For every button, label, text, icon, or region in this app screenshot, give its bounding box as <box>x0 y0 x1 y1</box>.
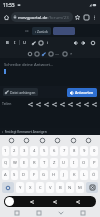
button[interactable]: N <box>66 182 74 193</box>
button[interactable]: M <box>76 182 84 193</box>
button[interactable]: List <box>47 50 54 57</box>
staticText: R <box>33 160 36 166</box>
button[interactable]: 1 <box>2 146 9 156</box>
button[interactable]: Settings <box>69 136 78 145</box>
button[interactable]: Code <box>33 50 40 57</box>
button[interactable]: mevgportal.de <box>11 12 73 22</box>
button[interactable]: Expand <box>84 136 93 145</box>
staticText: B <box>59 185 62 191</box>
button[interactable]: ‹ Zurück <box>32 27 51 35</box>
button[interactable]: Q <box>2 158 9 168</box>
button[interactable]: Share <box>82 100 90 108</box>
button[interactable]: 2 <box>11 146 18 156</box>
button[interactable]: Search <box>7 136 16 145</box>
staticText: — <box>55 51 60 57</box>
button[interactable]: 6 <box>50 146 58 156</box>
button[interactable]: Reddit <box>42 100 50 108</box>
button[interactable]: Backspace <box>86 182 98 193</box>
button[interactable]: Pinterest <box>50 100 58 108</box>
button[interactable]: Ö <box>90 170 98 180</box>
button[interactable]: R <box>30 158 38 168</box>
button[interactable]: U <box>60 158 68 168</box>
button[interactable]: L <box>80 170 88 180</box>
button[interactable]: Repeat <box>50 197 59 206</box>
button[interactable]: F <box>30 170 38 180</box>
staticText: Ö <box>92 172 96 178</box>
button[interactable]: Share <box>73 197 82 206</box>
button[interactable]: Back <box>56 208 66 217</box>
button[interactable]: Antworten <box>67 88 97 97</box>
button[interactable]: E <box>20 158 28 168</box>
button[interactable]: Underline <box>21 39 28 46</box>
button[interactable]: Quote <box>26 50 33 57</box>
button[interactable]: Tabs <box>82 11 91 23</box>
button[interactable]: Tumblr <box>58 100 66 108</box>
button[interactable]: Clipboard <box>38 136 47 145</box>
button[interactable]: V <box>46 182 54 193</box>
button[interactable]: Email <box>74 100 82 108</box>
button[interactable]: Redo <box>79 39 86 46</box>
staticText: C <box>39 185 42 191</box>
button[interactable]: Shuffle <box>27 197 36 206</box>
button[interactable]: C <box>36 182 44 193</box>
button[interactable]: Schreibe deine Antwort… <box>0 58 100 86</box>
staticText: D <box>22 172 26 178</box>
button[interactable]: 3 <box>20 146 28 156</box>
button[interactable]: Voice input <box>53 136 62 145</box>
staticText: 4 <box>33 148 36 154</box>
staticText: A <box>4 172 7 178</box>
button[interactable]: S <box>11 170 18 180</box>
staticText: B <box>6 40 9 46</box>
button[interactable]: H <box>50 170 58 180</box>
button[interactable]: 8 <box>70 146 78 156</box>
button[interactable]: G <box>40 170 48 180</box>
button[interactable]: A <box>2 170 9 180</box>
button[interactable]: 7 <box>60 146 68 156</box>
button[interactable]: Italic <box>11 39 18 46</box>
staticText: I <box>14 40 16 46</box>
button[interactable]: Clear <box>68 50 75 57</box>
button[interactable]: I <box>70 158 78 168</box>
button[interactable]: More options <box>91 11 98 23</box>
button[interactable]: Info <box>44 39 51 46</box>
button[interactable]: Emoji <box>89 39 96 46</box>
button[interactable]: 9 <box>80 146 88 156</box>
button[interactable]: Keyboard <box>78 208 88 217</box>
button[interactable]: Y <box>16 182 24 193</box>
button[interactable]: Play <box>5 197 14 206</box>
button[interactable]: 0 <box>90 146 98 156</box>
staticText: i <box>47 40 49 46</box>
button[interactable]: Shift <box>2 182 14 193</box>
button[interactable]: Home <box>2 11 11 23</box>
button[interactable]: Bold <box>4 39 11 46</box>
button[interactable]: Datei anhängen <box>3 88 38 96</box>
button[interactable]: Bookmark <box>73 11 82 23</box>
button[interactable]: Link <box>90 100 98 108</box>
button[interactable]: Image <box>37 39 44 46</box>
button[interactable]: 5 <box>40 146 48 156</box>
button[interactable] <box>53 27 75 35</box>
button[interactable]: Z <box>50 158 58 168</box>
button[interactable]: Link <box>30 39 37 46</box>
button[interactable]: X <box>26 100 34 108</box>
button[interactable]: J <box>60 170 68 180</box>
button[interactable]: Stickers <box>22 136 31 145</box>
button[interactable]: Undo <box>72 39 79 46</box>
button[interactable]: Facebook <box>34 100 42 108</box>
button[interactable]: X <box>26 182 34 193</box>
button[interactable]: W <box>11 158 18 168</box>
button[interactable]: Line <box>54 50 61 57</box>
button[interactable]: P <box>90 158 98 168</box>
button[interactable]: T <box>40 158 48 168</box>
button[interactable]: O <box>80 158 88 168</box>
button[interactable]: Home <box>34 208 44 217</box>
button[interactable]: D <box>20 170 28 180</box>
button[interactable]: B <box>56 182 64 193</box>
button[interactable]: Attach <box>40 50 47 57</box>
button[interactable]: 4 <box>30 146 38 156</box>
button[interactable]: K <box>70 170 78 180</box>
button[interactable]: Table <box>61 50 68 57</box>
button[interactable]: WhatsApp <box>66 100 74 108</box>
staticText: 2 <box>13 148 16 154</box>
button[interactable]: Recents <box>12 208 22 217</box>
